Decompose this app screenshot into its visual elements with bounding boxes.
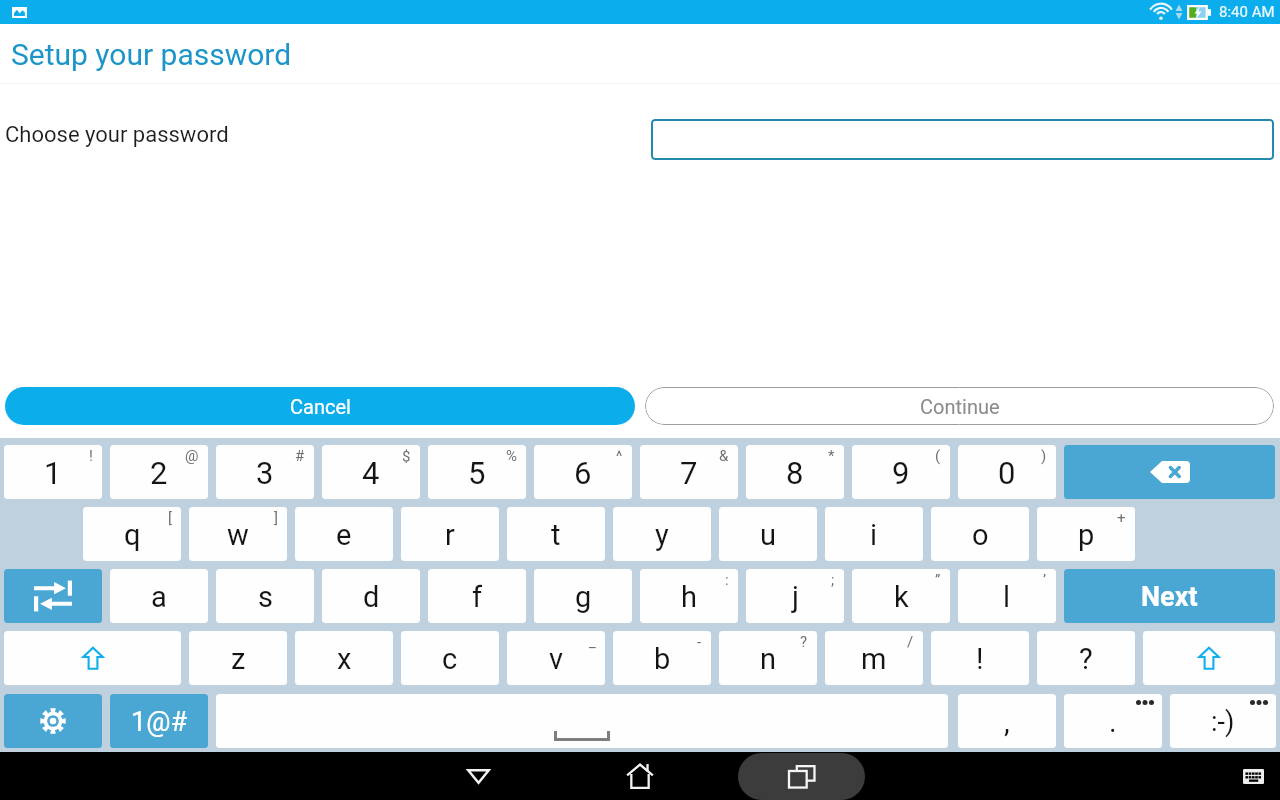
- button[interactable]: Space: [216, 694, 948, 748]
- button[interactable]: 9: [852, 445, 950, 499]
- button[interactable]: u: [719, 507, 817, 561]
- button[interactable]: f: [428, 569, 526, 623]
- staticText: 8:40 AM: [1219, 3, 1275, 21]
- staticText: :: [725, 571, 729, 589]
- staticText: c: [442, 642, 458, 676]
- staticText: 3: [256, 455, 274, 491]
- staticText: ?: [1079, 642, 1093, 676]
- button[interactable]: t: [507, 507, 605, 561]
- button[interactable]: w: [189, 507, 287, 561]
- staticText: b: [654, 642, 671, 676]
- button[interactable]: l: [958, 569, 1056, 623]
- button[interactable]: Home: [560, 752, 720, 800]
- button[interactable]: q: [83, 507, 181, 561]
- button[interactable]: b: [613, 631, 711, 685]
- button[interactable]: Shift: [1143, 631, 1275, 685]
- staticText: [: [168, 509, 172, 527]
- button[interactable]: ,: [958, 694, 1056, 748]
- staticText: 4: [362, 455, 380, 491]
- button[interactable]: i: [825, 507, 923, 561]
- button[interactable]: :-): [1170, 694, 1276, 748]
- button[interactable]: g: [534, 569, 632, 623]
- button[interactable]: 5: [428, 445, 526, 499]
- button[interactable]: Next: [1064, 569, 1275, 623]
- staticText: n: [760, 642, 777, 676]
- button[interactable]: 7: [640, 445, 738, 499]
- staticText: 9: [892, 455, 910, 491]
- button[interactable]: c: [401, 631, 499, 685]
- button[interactable]: j: [746, 569, 844, 623]
- button[interactable]: .: [1064, 694, 1162, 748]
- staticText: &: [719, 447, 729, 465]
- staticText: q: [124, 518, 141, 552]
- staticText: f: [472, 580, 483, 614]
- staticText: 1@#: [131, 706, 188, 738]
- button[interactable]: p: [1037, 507, 1135, 561]
- staticText: 8: [786, 455, 804, 491]
- staticText: ): [1041, 447, 1047, 465]
- staticText: .: [1109, 705, 1117, 739]
- staticText: v: [549, 642, 564, 676]
- button[interactable]: Cancel: [5, 387, 635, 425]
- button[interactable]: n: [719, 631, 817, 685]
- button[interactable]: s: [216, 569, 314, 623]
- button[interactable]: Recent apps: [738, 752, 865, 800]
- staticText: s: [258, 580, 273, 614]
- button[interactable]: o: [931, 507, 1029, 561]
- staticText: k: [894, 580, 909, 614]
- staticText: w: [227, 518, 249, 552]
- button[interactable]: 2: [110, 445, 208, 499]
- button[interactable]: Shift: [4, 631, 181, 685]
- staticText: u: [760, 518, 776, 552]
- button[interactable]: ?: [1037, 631, 1135, 685]
- staticText: (: [935, 447, 941, 465]
- button[interactable]: z: [189, 631, 287, 685]
- button[interactable]: m: [825, 631, 923, 685]
- staticText: Cancel: [290, 395, 351, 418]
- button[interactable]: Backspace: [1064, 445, 1275, 499]
- button[interactable]: d: [322, 569, 420, 623]
- button[interactable]: y: [613, 507, 711, 561]
- staticText: Next: [1141, 581, 1198, 613]
- button[interactable]: Hide keyboard: [398, 752, 558, 800]
- button[interactable]: a: [110, 569, 208, 623]
- staticText: _: [589, 633, 596, 651]
- staticText: $: [402, 447, 411, 465]
- button[interactable]: 1@#: [110, 694, 208, 748]
- staticText: z: [231, 642, 246, 676]
- staticText: *: [828, 447, 835, 465]
- button[interactable]: r: [401, 507, 499, 561]
- button[interactable]: x: [295, 631, 393, 685]
- button[interactable]: Settings: [4, 694, 102, 748]
- staticText: g: [575, 580, 592, 614]
- staticText: a: [151, 580, 167, 614]
- button[interactable]: h: [640, 569, 738, 623]
- staticText: y: [655, 518, 669, 552]
- button[interactable]: 1: [4, 445, 102, 499]
- button[interactable]: Switch keyboard: [1226, 752, 1280, 800]
- staticText: !: [976, 642, 984, 676]
- button[interactable]: Password field: [651, 119, 1274, 160]
- staticText: ”: [935, 571, 941, 589]
- button[interactable]: Tab: [4, 569, 102, 623]
- staticText: @: [185, 447, 199, 465]
- staticText: ]: [274, 509, 278, 527]
- staticText: l: [1003, 580, 1011, 614]
- button[interactable]: 0: [958, 445, 1056, 499]
- button[interactable]: !: [931, 631, 1029, 685]
- button[interactable]: k: [852, 569, 950, 623]
- staticText: ;: [831, 571, 835, 589]
- staticText: /: [907, 633, 914, 651]
- button[interactable]: v: [507, 631, 605, 685]
- staticText: p: [1078, 518, 1095, 552]
- button[interactable]: e: [295, 507, 393, 561]
- staticText: Choose your password: [5, 122, 229, 148]
- button[interactable]: 8: [746, 445, 844, 499]
- button[interactable]: 3: [216, 445, 314, 499]
- button[interactable]: Continue: [645, 387, 1274, 425]
- staticText: 7: [680, 455, 698, 491]
- staticText: 1: [44, 455, 62, 491]
- staticText: 2: [150, 455, 168, 491]
- button[interactable]: 4: [322, 445, 420, 499]
- button[interactable]: 6: [534, 445, 632, 499]
